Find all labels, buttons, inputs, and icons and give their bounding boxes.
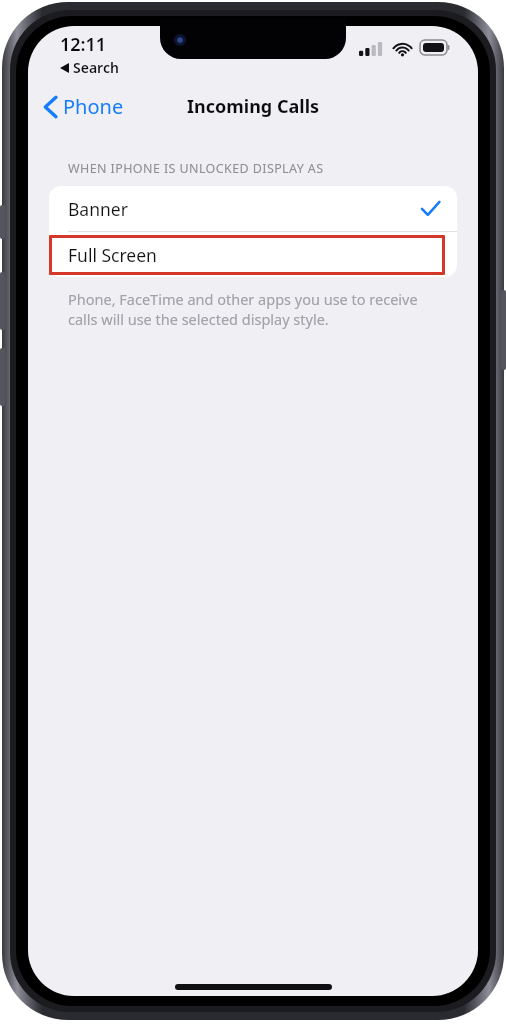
staticText: Full Screen [68,243,157,267]
staticText: 12:11 [60,32,107,57]
button[interactable]: Banner [49,186,457,231]
staticText: Banner [68,197,128,221]
button[interactable]: Phone [38,87,130,126]
staticText: Incoming Calls [187,94,320,119]
button[interactable]: Search [58,56,121,79]
staticText: WHEN IPHONE IS UNLOCKED DISPLAY AS [68,160,324,177]
button[interactable]: Full Screen [49,232,457,277]
staticText: Search [73,58,119,77]
staticText: Phone, FaceTime and other apps you use t… [68,289,418,329]
staticText: Phone [63,93,124,120]
